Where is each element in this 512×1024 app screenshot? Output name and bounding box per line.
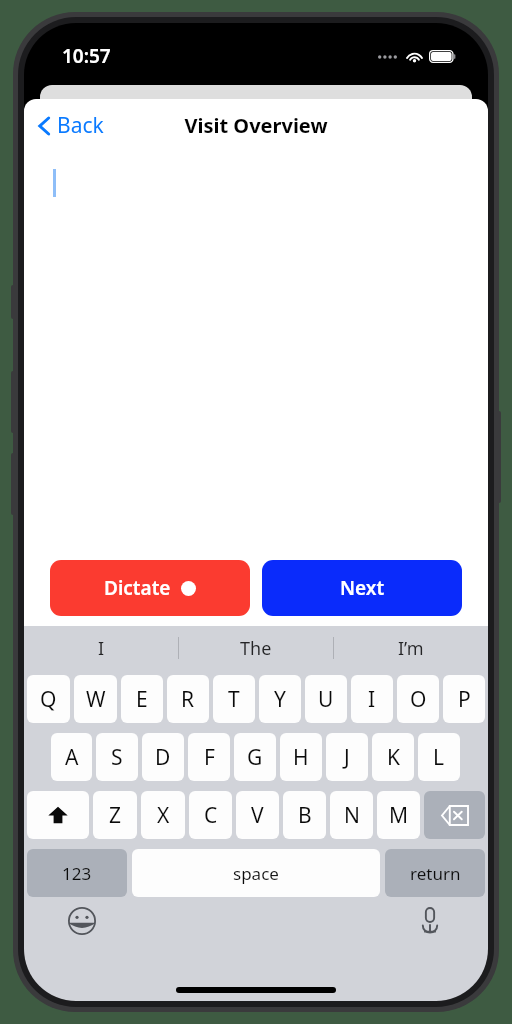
button[interactable]: W (74, 675, 117, 723)
staticText: return (410, 862, 461, 885)
button[interactable]: space (132, 849, 380, 897)
button[interactable]: O (397, 675, 439, 723)
button[interactable]: Next (262, 560, 462, 616)
staticText: P (458, 685, 471, 714)
button[interactable]: T (213, 675, 255, 723)
staticText: E (136, 685, 148, 714)
staticText: C (204, 801, 218, 830)
button[interactable]: F (188, 733, 230, 781)
staticText: V (251, 801, 264, 830)
button[interactable]: B (283, 791, 326, 839)
button[interactable]: return (385, 849, 485, 897)
button[interactable]: M (377, 791, 420, 839)
button[interactable]: X (141, 791, 185, 839)
staticText: D (155, 743, 171, 772)
button[interactable]: A (51, 733, 92, 781)
button[interactable]: L (418, 733, 460, 781)
button[interactable]: H (280, 733, 322, 781)
staticText: Z (109, 801, 122, 830)
button[interactable]: K (372, 733, 414, 781)
staticText: G (247, 743, 263, 772)
staticText: F (204, 743, 215, 772)
staticText: K (387, 743, 400, 772)
button[interactable]: Back (24, 105, 116, 146)
staticText: U (318, 685, 334, 714)
button[interactable]: Shift (27, 791, 89, 839)
staticText: Dictate (104, 575, 171, 601)
staticText: L (433, 743, 445, 772)
staticText: J (344, 743, 350, 772)
staticText: M (389, 801, 409, 830)
staticText: A (65, 743, 79, 772)
staticText: Back (57, 111, 104, 140)
staticText: Next (340, 575, 385, 601)
button[interactable]: N (330, 791, 373, 839)
staticText: Visit Overview (184, 112, 328, 139)
button[interactable]: I (24, 626, 178, 670)
staticText: 123 (62, 862, 92, 885)
staticText: Y (274, 685, 286, 714)
button[interactable]: D (142, 733, 184, 781)
button[interactable]: J (326, 733, 368, 781)
button[interactable]: R (167, 675, 209, 723)
button[interactable]: Dictate (50, 560, 250, 616)
staticText: O (410, 685, 427, 714)
staticText: The (240, 636, 272, 661)
button[interactable]: E (121, 675, 163, 723)
button[interactable]: Y (259, 675, 301, 723)
staticText: T (228, 685, 240, 714)
button[interactable]: The (179, 626, 333, 670)
button[interactable]: V (236, 791, 279, 839)
staticText: Q (40, 685, 57, 714)
button[interactable]: G (234, 733, 276, 781)
button[interactable]: Z (93, 791, 137, 839)
button[interactable]: 123 (27, 849, 127, 897)
button[interactable]: Delete (424, 791, 485, 839)
button[interactable]: Q (27, 675, 70, 723)
staticText: I (98, 636, 105, 661)
staticText: I’m (398, 636, 424, 661)
staticText: 10:57 (62, 43, 111, 69)
button[interactable]: U (305, 675, 347, 723)
button[interactable]: P (443, 675, 485, 723)
button[interactable]: Emoji (66, 905, 98, 937)
staticText: S (111, 743, 123, 772)
staticText: N (344, 801, 360, 830)
staticText: space (233, 862, 279, 885)
staticText: X (157, 801, 170, 830)
button[interactable]: I (351, 675, 393, 723)
staticText: W (86, 685, 106, 714)
staticText: B (298, 801, 312, 830)
button[interactable]: Dictation (414, 905, 446, 937)
staticText: R (181, 685, 195, 714)
button[interactable]: I’m (334, 626, 488, 670)
button[interactable]: S (96, 733, 138, 781)
staticText: I (368, 685, 376, 714)
button[interactable]: C (189, 791, 232, 839)
staticText: H (293, 743, 309, 772)
